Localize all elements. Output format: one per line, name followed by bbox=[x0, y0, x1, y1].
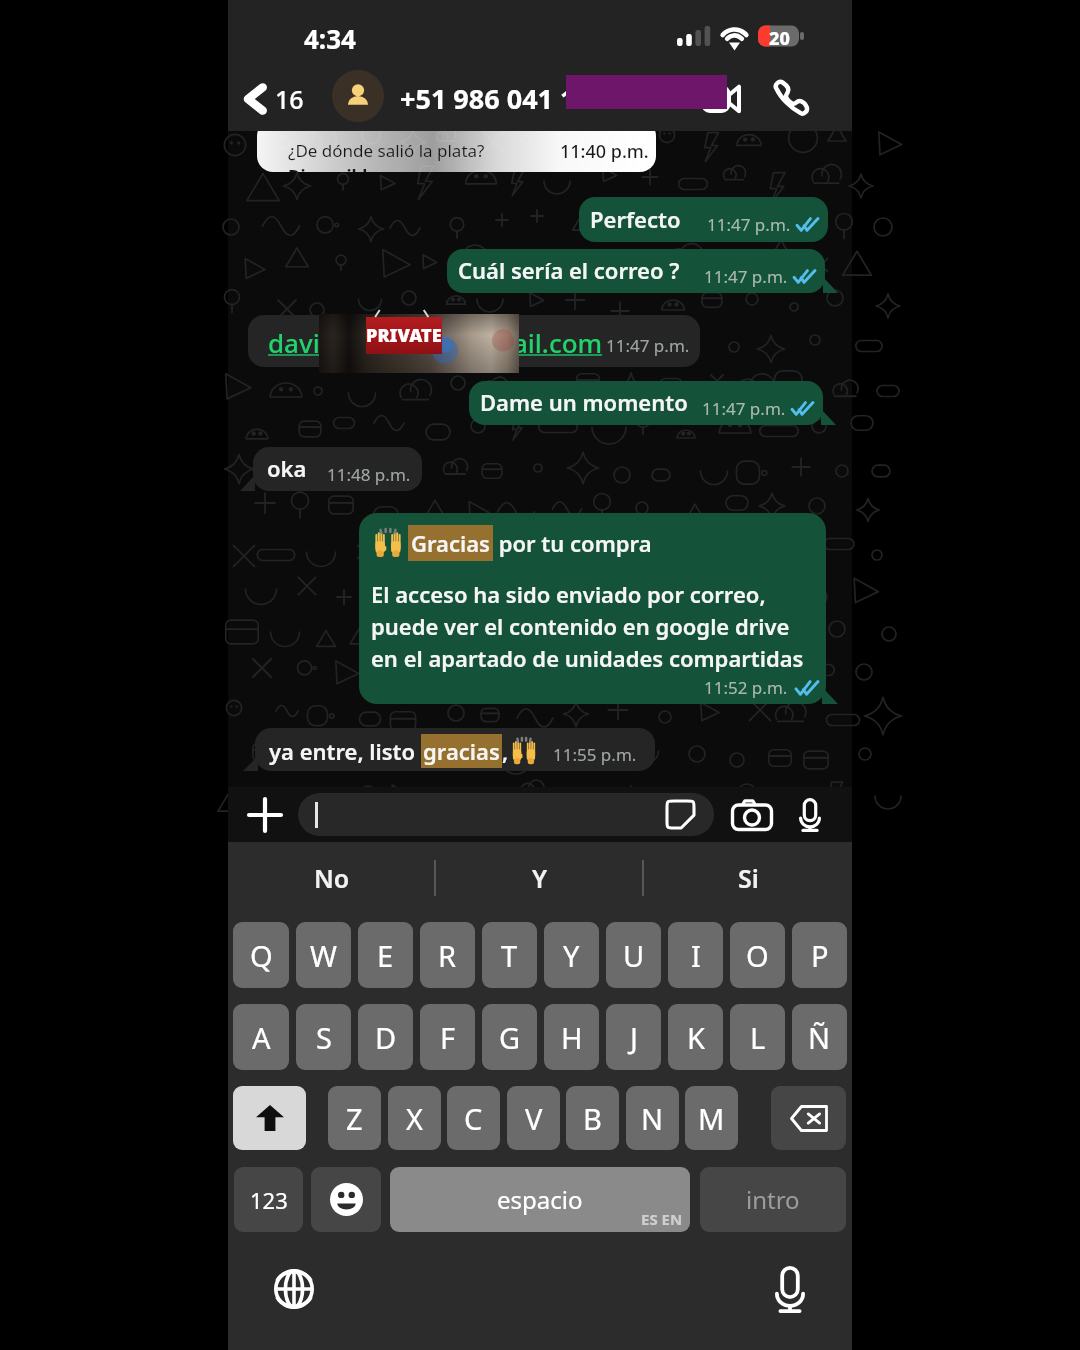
button[interactable]: Dictate bbox=[766, 1265, 814, 1313]
staticText: davidxxxxxxxx@gmail.com bbox=[268, 325, 603, 360]
button[interactable]: Y bbox=[544, 922, 599, 988]
staticText: por tu compra bbox=[493, 528, 652, 558]
staticText: Z bbox=[346, 1099, 363, 1138]
staticText: 11:52 p.m. bbox=[704, 676, 788, 699]
button[interactable]: G bbox=[482, 1004, 537, 1070]
staticText: E bbox=[377, 936, 394, 975]
staticText: Q bbox=[250, 936, 273, 975]
button[interactable]: Camera bbox=[724, 792, 780, 837]
staticText: Ñ bbox=[808, 1018, 831, 1057]
button[interactable]: Shift bbox=[233, 1086, 306, 1150]
staticText: Y bbox=[532, 861, 548, 895]
staticText: 11:47 p.m. bbox=[704, 265, 788, 288]
button[interactable]: M bbox=[685, 1086, 738, 1150]
button[interactable]: W bbox=[296, 922, 351, 988]
staticText: 11:40 p.m. bbox=[560, 139, 649, 164]
staticText: PRIVATE bbox=[366, 323, 442, 348]
button[interactable]: P bbox=[792, 922, 847, 988]
button[interactable]: Z bbox=[328, 1086, 381, 1150]
staticText: J bbox=[630, 1018, 638, 1057]
staticText: +51 986 041 1 bbox=[400, 80, 576, 117]
staticText: T bbox=[501, 936, 518, 975]
staticText: en el apartado de unidades compartidas bbox=[371, 643, 804, 673]
staticText: K bbox=[687, 1018, 705, 1057]
button[interactable]: C bbox=[447, 1086, 500, 1150]
button[interactable]: K bbox=[668, 1004, 723, 1070]
staticText: V bbox=[525, 1099, 543, 1138]
staticText: F bbox=[440, 1018, 456, 1057]
staticText: X bbox=[406, 1099, 423, 1138]
button[interactable]: V bbox=[507, 1086, 560, 1150]
button[interactable]: espacio bbox=[390, 1167, 690, 1232]
button[interactable]: 123 bbox=[234, 1167, 303, 1232]
button[interactable] bbox=[447, 249, 825, 293]
staticText: ya entre, listo bbox=[269, 736, 421, 766]
staticText: espacio bbox=[497, 1183, 583, 1216]
staticText: , bbox=[502, 736, 509, 766]
button[interactable]: O bbox=[730, 922, 785, 988]
staticText: 11:48 p.m. bbox=[327, 463, 411, 486]
button[interactable] bbox=[469, 381, 823, 425]
staticText: W bbox=[310, 936, 337, 975]
staticText: N bbox=[641, 1099, 664, 1138]
button[interactable]: Change language bbox=[270, 1265, 318, 1313]
button[interactable]: L bbox=[730, 1004, 785, 1070]
staticText: D bbox=[375, 1018, 397, 1057]
staticText: U bbox=[623, 936, 645, 975]
button[interactable]: U bbox=[606, 922, 661, 988]
button[interactable]: Y bbox=[436, 847, 644, 909]
button[interactable]: J bbox=[606, 1004, 661, 1070]
staticText: gracias bbox=[423, 736, 500, 766]
button[interactable]: T bbox=[482, 922, 537, 988]
staticText: G bbox=[499, 1018, 521, 1057]
button[interactable]: A bbox=[233, 1004, 289, 1070]
button[interactable]: B bbox=[566, 1086, 619, 1150]
staticText: 11:47 p.m. bbox=[707, 213, 791, 236]
button[interactable]: E bbox=[358, 922, 413, 988]
button[interactable]: Voice call bbox=[758, 71, 824, 125]
button[interactable]: Video call bbox=[694, 76, 748, 122]
staticText: B bbox=[583, 1099, 602, 1138]
button[interactable] bbox=[253, 447, 422, 491]
staticText: Disponible bbox=[288, 165, 378, 172]
button[interactable]: I bbox=[668, 922, 723, 988]
staticText: No bbox=[314, 861, 350, 895]
button[interactable]: S bbox=[296, 1004, 351, 1070]
button[interactable] bbox=[579, 197, 828, 242]
button[interactable]: intro bbox=[700, 1167, 846, 1232]
staticText: ¿De dónde salió la plata? bbox=[288, 139, 485, 162]
staticText: 20 bbox=[769, 26, 790, 51]
button[interactable]: No bbox=[228, 847, 436, 909]
staticText: Si bbox=[738, 861, 759, 895]
staticText: I bbox=[691, 936, 701, 975]
staticText: R bbox=[438, 936, 457, 975]
staticText: A bbox=[252, 1018, 271, 1057]
button[interactable]: R bbox=[420, 922, 475, 988]
button[interactable]: X bbox=[388, 1086, 441, 1150]
staticText: Cuál sería el correo ? bbox=[458, 255, 680, 285]
staticText: Perfecto bbox=[590, 204, 681, 234]
staticText: Gracias bbox=[411, 528, 490, 558]
button[interactable]: Voice message bbox=[784, 792, 836, 837]
button[interactable]: Ñ bbox=[792, 1004, 847, 1070]
button[interactable]: ya entre, listo bbox=[255, 728, 655, 771]
button[interactable]: H bbox=[544, 1004, 599, 1070]
button[interactable]: Backspace bbox=[771, 1086, 846, 1150]
button[interactable]: Emoji bbox=[311, 1167, 381, 1232]
button[interactable]: D bbox=[358, 1004, 413, 1070]
button[interactable] bbox=[298, 793, 714, 836]
staticText: 11:47 p.m. bbox=[702, 397, 786, 420]
button[interactable]: Contact avatar bbox=[332, 70, 384, 122]
staticText: M bbox=[698, 1099, 725, 1138]
staticText: oka bbox=[267, 453, 307, 483]
button[interactable]: Gracias bbox=[359, 513, 826, 704]
button[interactable]: 16 bbox=[238, 75, 310, 123]
button[interactable]: Attach bbox=[238, 791, 292, 838]
staticText: El acceso ha sido enviado por correo, bbox=[371, 579, 766, 609]
button[interactable]: Q bbox=[233, 922, 289, 988]
button[interactable]: davidxxxxxxxx@gmail.com bbox=[248, 315, 700, 367]
button[interactable]: N bbox=[626, 1086, 679, 1150]
button[interactable]: Si bbox=[644, 847, 852, 909]
staticText: Dame un momento bbox=[480, 387, 688, 417]
button[interactable]: F bbox=[420, 1004, 475, 1070]
